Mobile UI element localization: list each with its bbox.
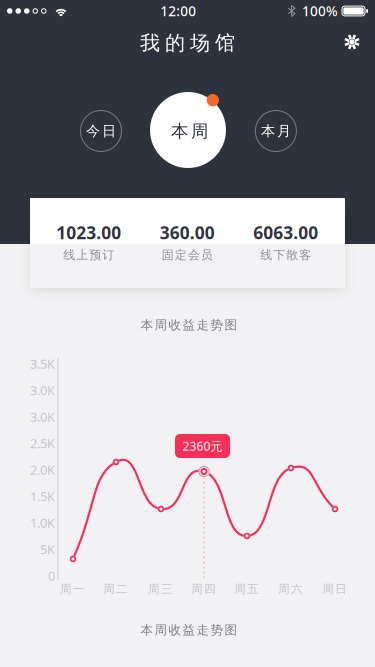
staticText: 周 六 [278, 582, 303, 596]
staticText: 3.5K [30, 355, 55, 372]
staticText: 1.5K [30, 487, 55, 505]
staticText: 固 定 会 员 [162, 247, 213, 262]
staticText: 周 五 [234, 582, 259, 596]
staticText: 周 三 [148, 582, 173, 596]
staticText: 本 周 收 益 走 势 图 [140, 317, 237, 333]
staticText: 今 日 [86, 122, 116, 140]
staticText: 本 周 收 益 走 势 图 [140, 622, 237, 638]
button[interactable]: Settings [330, 22, 374, 62]
staticText: 周 日 [322, 582, 347, 596]
staticText: 周 四 [191, 582, 216, 596]
staticText: 2.0K [30, 461, 55, 478]
staticText: 1023.00 [56, 221, 121, 244]
staticText: 5K [40, 540, 55, 558]
staticText: 线 下 散 客 [260, 247, 311, 262]
staticText: 360.00 [160, 221, 215, 244]
button[interactable]: 今 日 [80, 110, 122, 152]
staticText: 3.0K [30, 381, 55, 399]
staticText: 12:00 [160, 2, 196, 20]
staticText: 2360元 [182, 438, 222, 454]
staticText: 周 一 [60, 582, 85, 596]
staticText: 3.0K [30, 408, 55, 425]
staticText: 6063.00 [253, 221, 318, 244]
staticText: 2.5K [30, 434, 55, 452]
button[interactable]: 本 周 [144, 86, 232, 174]
staticText: 0 [48, 567, 55, 584]
staticText: 周 二 [103, 582, 128, 596]
button[interactable]: 本 月 [255, 110, 297, 152]
staticText: 100% [302, 2, 338, 20]
staticText: 我 的 场 馆 [140, 30, 235, 56]
staticText: 本 周 [171, 120, 208, 142]
staticText: 1.0K [30, 514, 55, 531]
staticText: 线 上 预 订 [63, 247, 114, 262]
staticText: 本 月 [261, 122, 291, 140]
